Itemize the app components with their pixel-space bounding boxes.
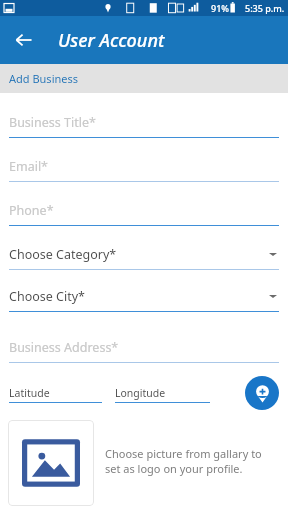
staticText: Latitude [9, 386, 50, 400]
staticText: Add Business [9, 71, 79, 86]
button[interactable]: Add Business [0, 64, 288, 93]
button[interactable]: Business Address* [9, 332, 279, 376]
button[interactable]: Email* [9, 151, 279, 195]
staticText: 5:35 p.m. [245, 2, 285, 14]
staticText: Email* [9, 158, 48, 175]
button[interactable]: Back [6, 22, 42, 58]
button[interactable]: Business Title* [9, 107, 279, 151]
button[interactable]: Phone* [9, 195, 279, 239]
staticText: Longitude [115, 386, 166, 400]
staticText: Choose Category* [9, 246, 117, 263]
button[interactable]: Choose City* [9, 281, 279, 323]
staticText: Phone* [9, 202, 54, 219]
staticText: Choose City* [9, 288, 85, 305]
staticText: User Account [58, 28, 165, 53]
staticText: Business Title* [9, 114, 96, 131]
button[interactable]: Longitude [115, 384, 210, 403]
staticText: 91% [211, 2, 229, 14]
button[interactable]: Pick location on map [245, 376, 279, 410]
button[interactable]: Choose picture from gallery [8, 420, 94, 506]
staticText: Choose picture from gallary to set as lo… [105, 446, 280, 476]
staticText: Business Address* [9, 339, 119, 356]
button[interactable]: Choose Category* [9, 239, 279, 281]
button[interactable]: Latitude [9, 384, 102, 403]
